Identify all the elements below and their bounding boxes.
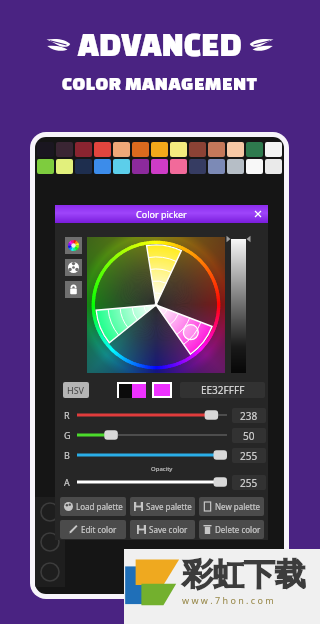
button[interactable] [265, 159, 282, 174]
button[interactable] [37, 159, 54, 174]
staticText: w w w . 7 h o n . c o m [182, 594, 274, 606]
staticText: Save color [149, 524, 188, 535]
button[interactable]: 255 [232, 448, 266, 463]
button[interactable]: Save palette [130, 497, 195, 516]
button[interactable]: mode0 [65, 237, 82, 254]
staticText: 255 [240, 449, 258, 463]
button[interactable] [94, 142, 111, 157]
staticText: G [64, 429, 71, 441]
button[interactable]: HSV [63, 382, 89, 398]
button[interactable] [189, 159, 206, 174]
button[interactable] [56, 159, 73, 174]
staticText: New palette [215, 501, 261, 512]
staticText: 50 [243, 429, 255, 443]
staticText: ADVANCED [78, 26, 242, 62]
staticText: EE32FFFF [201, 383, 245, 397]
button[interactable] [151, 142, 168, 157]
staticText: R [64, 409, 70, 421]
button[interactable] [75, 159, 92, 174]
button[interactable]: Tool 0 [35, 497, 65, 527]
staticText: Load palette [76, 501, 123, 512]
button[interactable]: mode2 [65, 281, 82, 298]
staticText: 255 [240, 476, 258, 490]
button[interactable]: Tool 1 [35, 527, 65, 557]
button[interactable] [56, 142, 73, 157]
button[interactable] [246, 142, 263, 157]
staticText: 238 [240, 409, 258, 423]
button[interactable] [151, 159, 168, 174]
button[interactable] [132, 142, 149, 157]
button[interactable]: 238 [232, 408, 266, 423]
button[interactable] [208, 142, 225, 157]
button[interactable] [113, 159, 130, 174]
button[interactable]: Save color [130, 520, 195, 539]
button[interactable] [208, 159, 225, 174]
button[interactable] [227, 159, 244, 174]
button[interactable] [189, 142, 206, 157]
staticText: Opacity [151, 465, 173, 472]
staticText: B [64, 449, 70, 461]
button[interactable] [265, 142, 282, 157]
button[interactable]: Edit color [60, 520, 126, 539]
staticText: A [64, 476, 70, 488]
button[interactable]: Tool 2 [35, 557, 65, 587]
button[interactable]: 50 [232, 428, 266, 443]
button[interactable] [170, 159, 187, 174]
button[interactable]: 255 [232, 475, 266, 490]
button[interactable] [170, 142, 187, 157]
staticText: Delete color [215, 524, 261, 535]
button[interactable]: EE32FFFF [180, 382, 265, 398]
staticText: Save palette [146, 501, 192, 512]
button[interactable] [246, 159, 263, 174]
staticText: Color picker [136, 208, 187, 220]
staticText: Edit color [81, 524, 117, 535]
staticText: HSV [67, 384, 85, 396]
button[interactable] [75, 142, 92, 157]
staticText: 彩虹下载 [182, 555, 306, 594]
button[interactable]: New palette [199, 497, 264, 516]
button[interactable]: mode1 [65, 259, 82, 276]
staticText: COLOR MANAGEMENT [62, 72, 258, 93]
button[interactable]: Load palette [60, 497, 126, 516]
button[interactable]: Close [253, 209, 263, 219]
button[interactable] [113, 142, 130, 157]
button[interactable] [227, 142, 244, 157]
button[interactable] [132, 159, 149, 174]
button[interactable]: Delete color [199, 520, 264, 539]
button[interactable] [94, 159, 111, 174]
